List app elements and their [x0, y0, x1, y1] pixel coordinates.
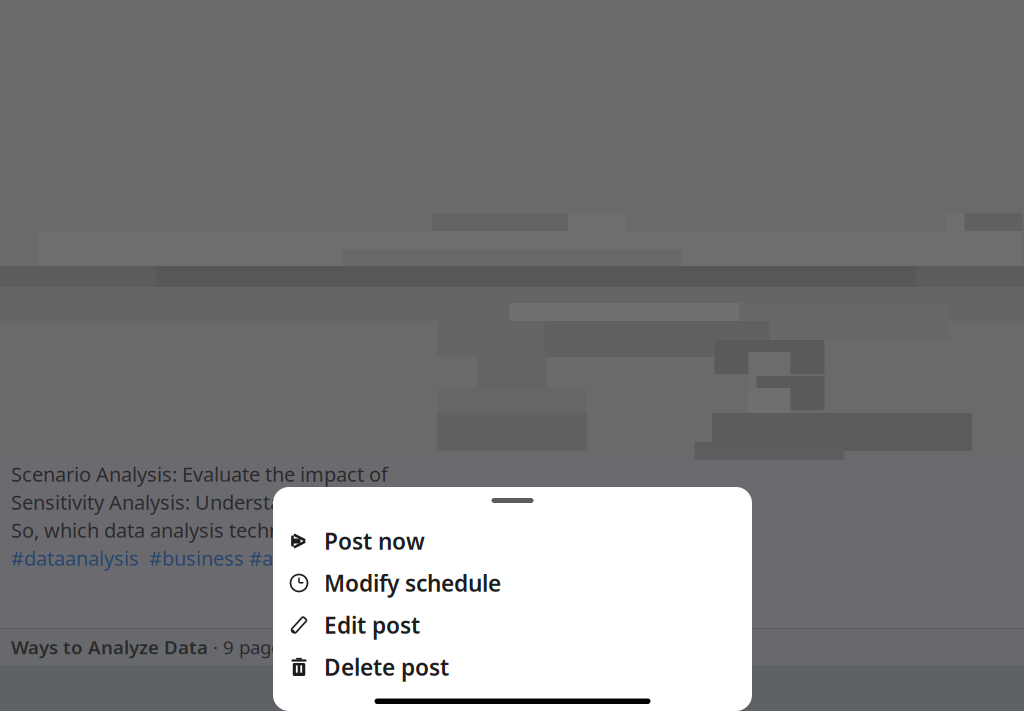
staticText: · 9 pages — [208, 635, 291, 659]
staticText: Modify schedule — [324, 568, 501, 598]
button[interactable]: Post now — [273, 520, 752, 562]
staticText: Ways to Analyze Data — [11, 635, 208, 659]
staticText: Delete post — [324, 652, 449, 682]
staticText: Sensitivity Analysis: Understand how a — [11, 489, 366, 515]
staticText: Edit post — [324, 610, 420, 640]
button[interactable]: Modify schedule — [273, 562, 752, 604]
button[interactable]: Edit post — [273, 604, 752, 646]
button[interactable]: Delete post — [273, 646, 752, 688]
staticText: Post now — [324, 526, 425, 556]
staticText: Scenario Analysis: Evaluate the impact o… — [11, 461, 388, 487]
staticText: #dataanalysis #business #analytics #data… — [11, 545, 496, 571]
staticText: So, which data analysis technique will — [11, 517, 357, 543]
